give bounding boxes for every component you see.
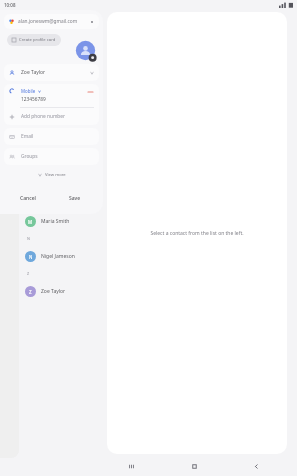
button[interactable]: Back [225, 456, 287, 476]
staticText: M [28, 219, 33, 225]
staticText: Select a contact from the list on the le… [150, 230, 244, 237]
staticText: Groups [21, 153, 38, 160]
button[interactable]: Save [51, 192, 99, 205]
button[interactable]: Zoe Taylor [4, 64, 99, 81]
button[interactable]: Z [19, 280, 107, 302]
button[interactable]: Change photo [75, 40, 96, 61]
staticText: N [29, 254, 33, 260]
staticText: alan.joneswm@gmail.com [18, 18, 78, 25]
staticText: Cancel [20, 195, 36, 202]
button[interactable]: Remove phone [86, 88, 94, 96]
staticText: Email [21, 133, 34, 140]
staticText: View more [45, 172, 66, 178]
staticText: N [27, 236, 30, 241]
staticText: Zoe Taylor [21, 69, 46, 76]
staticText: 123456789 [21, 96, 46, 103]
button[interactable]: Groups [4, 148, 99, 165]
staticText: Z [29, 289, 32, 295]
button[interactable]: Email [4, 128, 99, 145]
staticText: Mobile [21, 88, 36, 94]
staticText: 10:08 [4, 2, 16, 8]
staticText: Save [69, 195, 81, 202]
staticText: Create profile card [19, 37, 56, 43]
button[interactable]: alan.joneswm@gmail.com [4, 14, 99, 29]
button[interactable]: Home [163, 456, 225, 476]
staticText: Maria Smith [41, 218, 70, 225]
staticText: Z [27, 271, 30, 276]
button[interactable]: Cancel [4, 192, 51, 205]
button[interactable]: Mobile [21, 88, 41, 94]
button[interactable]: M [19, 210, 107, 232]
staticText: Add phone number [21, 113, 65, 120]
button[interactable]: Recents [100, 456, 163, 476]
staticText: Nigel Jameson [41, 253, 75, 260]
button[interactable]: Add phone number [4, 108, 99, 125]
staticText: Zoe Taylor [41, 288, 66, 295]
button[interactable]: N [19, 245, 107, 267]
button[interactable]: View more [4, 170, 99, 180]
button[interactable]: Create profile card [7, 34, 61, 46]
